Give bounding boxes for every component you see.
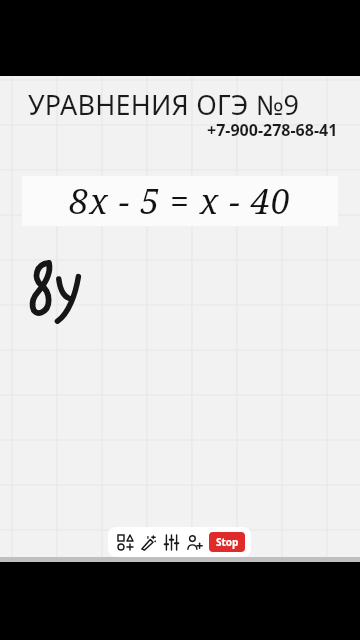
button[interactable]: Magic wand xyxy=(137,527,160,557)
button[interactable]: Stop xyxy=(209,532,245,552)
button[interactable]: Add shape xyxy=(114,527,137,557)
staticText: УРАВНЕНИЯ ОГЭ №9 xyxy=(28,86,300,123)
staticText: +7-900-278-68-41 xyxy=(207,119,338,141)
button[interactable]: Add person xyxy=(183,527,206,557)
button[interactable]: Adjust settings xyxy=(160,527,183,557)
staticText: Stop xyxy=(216,535,239,549)
staticText: 8x − 5 = x − 40 xyxy=(69,178,291,224)
